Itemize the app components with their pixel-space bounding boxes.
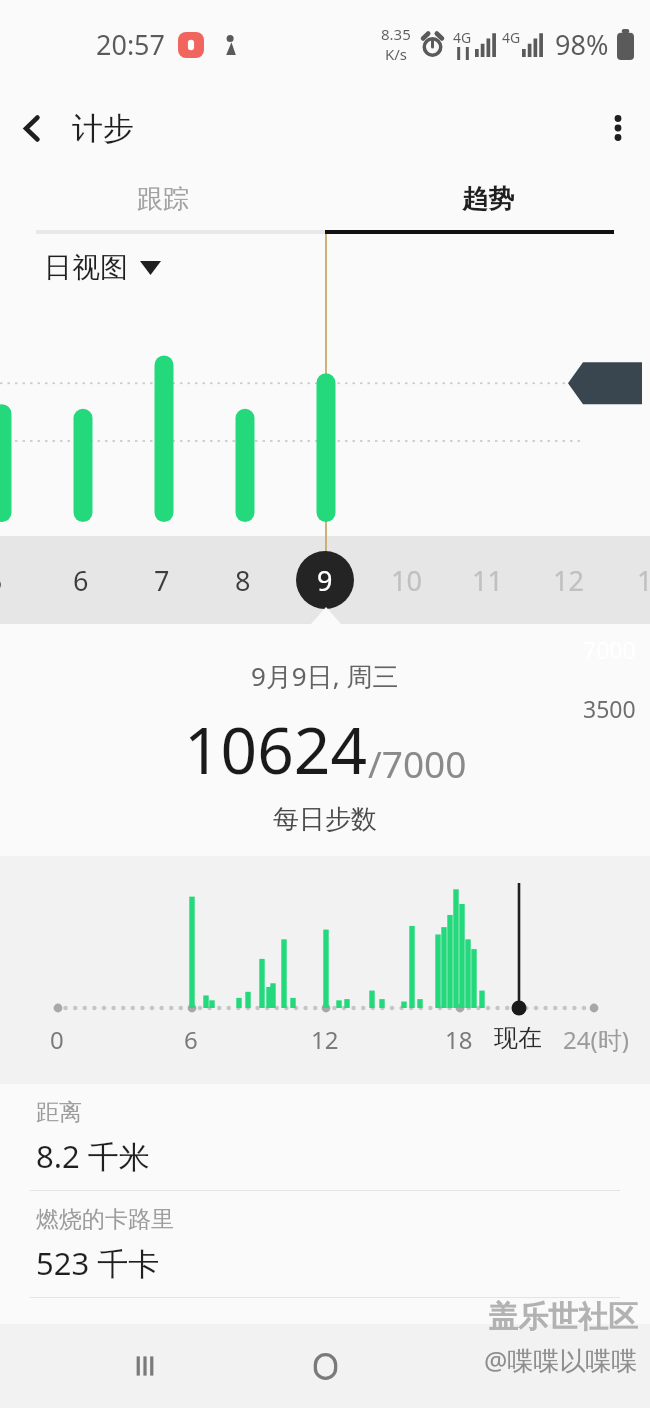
- staticText: 8.35: [381, 24, 411, 44]
- button[interactable]: 6: [48, 536, 114, 624]
- staticText: 距离: [36, 1098, 82, 1127]
- staticText: 计步: [72, 109, 134, 148]
- staticText: 10: [391, 562, 422, 599]
- staticText: 7: [154, 562, 170, 599]
- staticText: 盖乐世社区: [488, 1298, 638, 1336]
- staticText: 9月9日, 周三: [251, 658, 399, 694]
- button[interactable]: 距离: [0, 1084, 650, 1190]
- button[interactable]: More options: [586, 96, 650, 160]
- staticText: 3500: [583, 693, 636, 724]
- button[interactable]: 趋势: [325, 168, 650, 230]
- staticText: 98%: [555, 26, 609, 63]
- staticText: 9: [317, 562, 333, 599]
- staticText: @喋喋以喋喋: [484, 1342, 638, 1378]
- staticText: 4G: [502, 28, 521, 47]
- staticText: 6: [73, 562, 89, 599]
- staticText: 日视图: [44, 250, 128, 285]
- button[interactable]: 跟踪: [0, 168, 325, 230]
- staticText: 趋势: [462, 183, 514, 216]
- staticText: 12: [311, 1023, 339, 1056]
- staticText: 523 千卡: [36, 1242, 160, 1284]
- button[interactable]: 日视图: [44, 250, 161, 285]
- staticText: K/s: [385, 44, 408, 64]
- button[interactable]: 8: [210, 536, 276, 624]
- staticText: 1: [637, 562, 650, 599]
- button[interactable]: 7: [129, 536, 195, 624]
- staticText: 18: [445, 1023, 473, 1056]
- staticText: 每日步数: [273, 803, 377, 836]
- staticText: 24(时): [563, 1023, 629, 1056]
- button[interactable]: Recent apps: [109, 1330, 181, 1402]
- staticText: /7000: [368, 738, 467, 788]
- button[interactable]: 12: [535, 536, 601, 624]
- staticText: 20:57: [96, 26, 166, 63]
- staticText: 6: [184, 1023, 198, 1056]
- button[interactable]: 9: [292, 536, 358, 624]
- staticText: 跟踪: [137, 183, 189, 216]
- button[interactable]: 11: [454, 536, 520, 624]
- button[interactable]: 10: [373, 536, 439, 624]
- button[interactable]: 1: [612, 536, 650, 624]
- staticText: 12: [553, 562, 584, 599]
- staticText: 10624: [184, 706, 368, 793]
- staticText: 燃烧的卡路里: [36, 1205, 174, 1234]
- button[interactable]: Back: [0, 96, 64, 160]
- button[interactable]: Back: [470, 1330, 542, 1402]
- staticText: 现在: [494, 1023, 542, 1053]
- staticText: 8: [235, 562, 251, 599]
- staticText: 11: [472, 562, 503, 599]
- button[interactable]: Home: [289, 1330, 361, 1402]
- staticText: 0: [50, 1023, 64, 1056]
- staticText: 4G: [453, 28, 472, 47]
- staticText: 8.2 千米: [36, 1135, 150, 1177]
- staticText: 5: [0, 562, 3, 599]
- button[interactable]: 5: [0, 536, 28, 624]
- button[interactable]: 燃烧的卡路里: [0, 1191, 650, 1297]
